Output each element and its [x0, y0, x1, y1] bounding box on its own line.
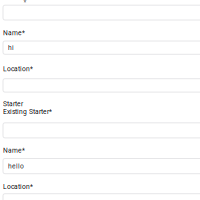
- button[interactable]: [3, 123, 200, 138]
- button[interactable]: hi: [3, 41, 200, 54]
- button[interactable]: [3, 5, 200, 20]
- staticText: hi: [8, 44, 14, 51]
- button[interactable]: hello: [3, 158, 200, 174]
- button[interactable]: [3, 79, 200, 92]
- staticText: hello: [8, 162, 24, 170]
- staticText: Starter: [3, 100, 23, 108]
- staticText: Location*: [3, 183, 33, 190]
- staticText: Existing Starter*: [3, 108, 52, 116]
- staticText: Location*: [3, 65, 33, 73]
- staticText: Name*: [3, 29, 25, 37]
- staticText: *: [23, 0, 26, 6]
- staticText: Name*: [3, 147, 25, 154]
